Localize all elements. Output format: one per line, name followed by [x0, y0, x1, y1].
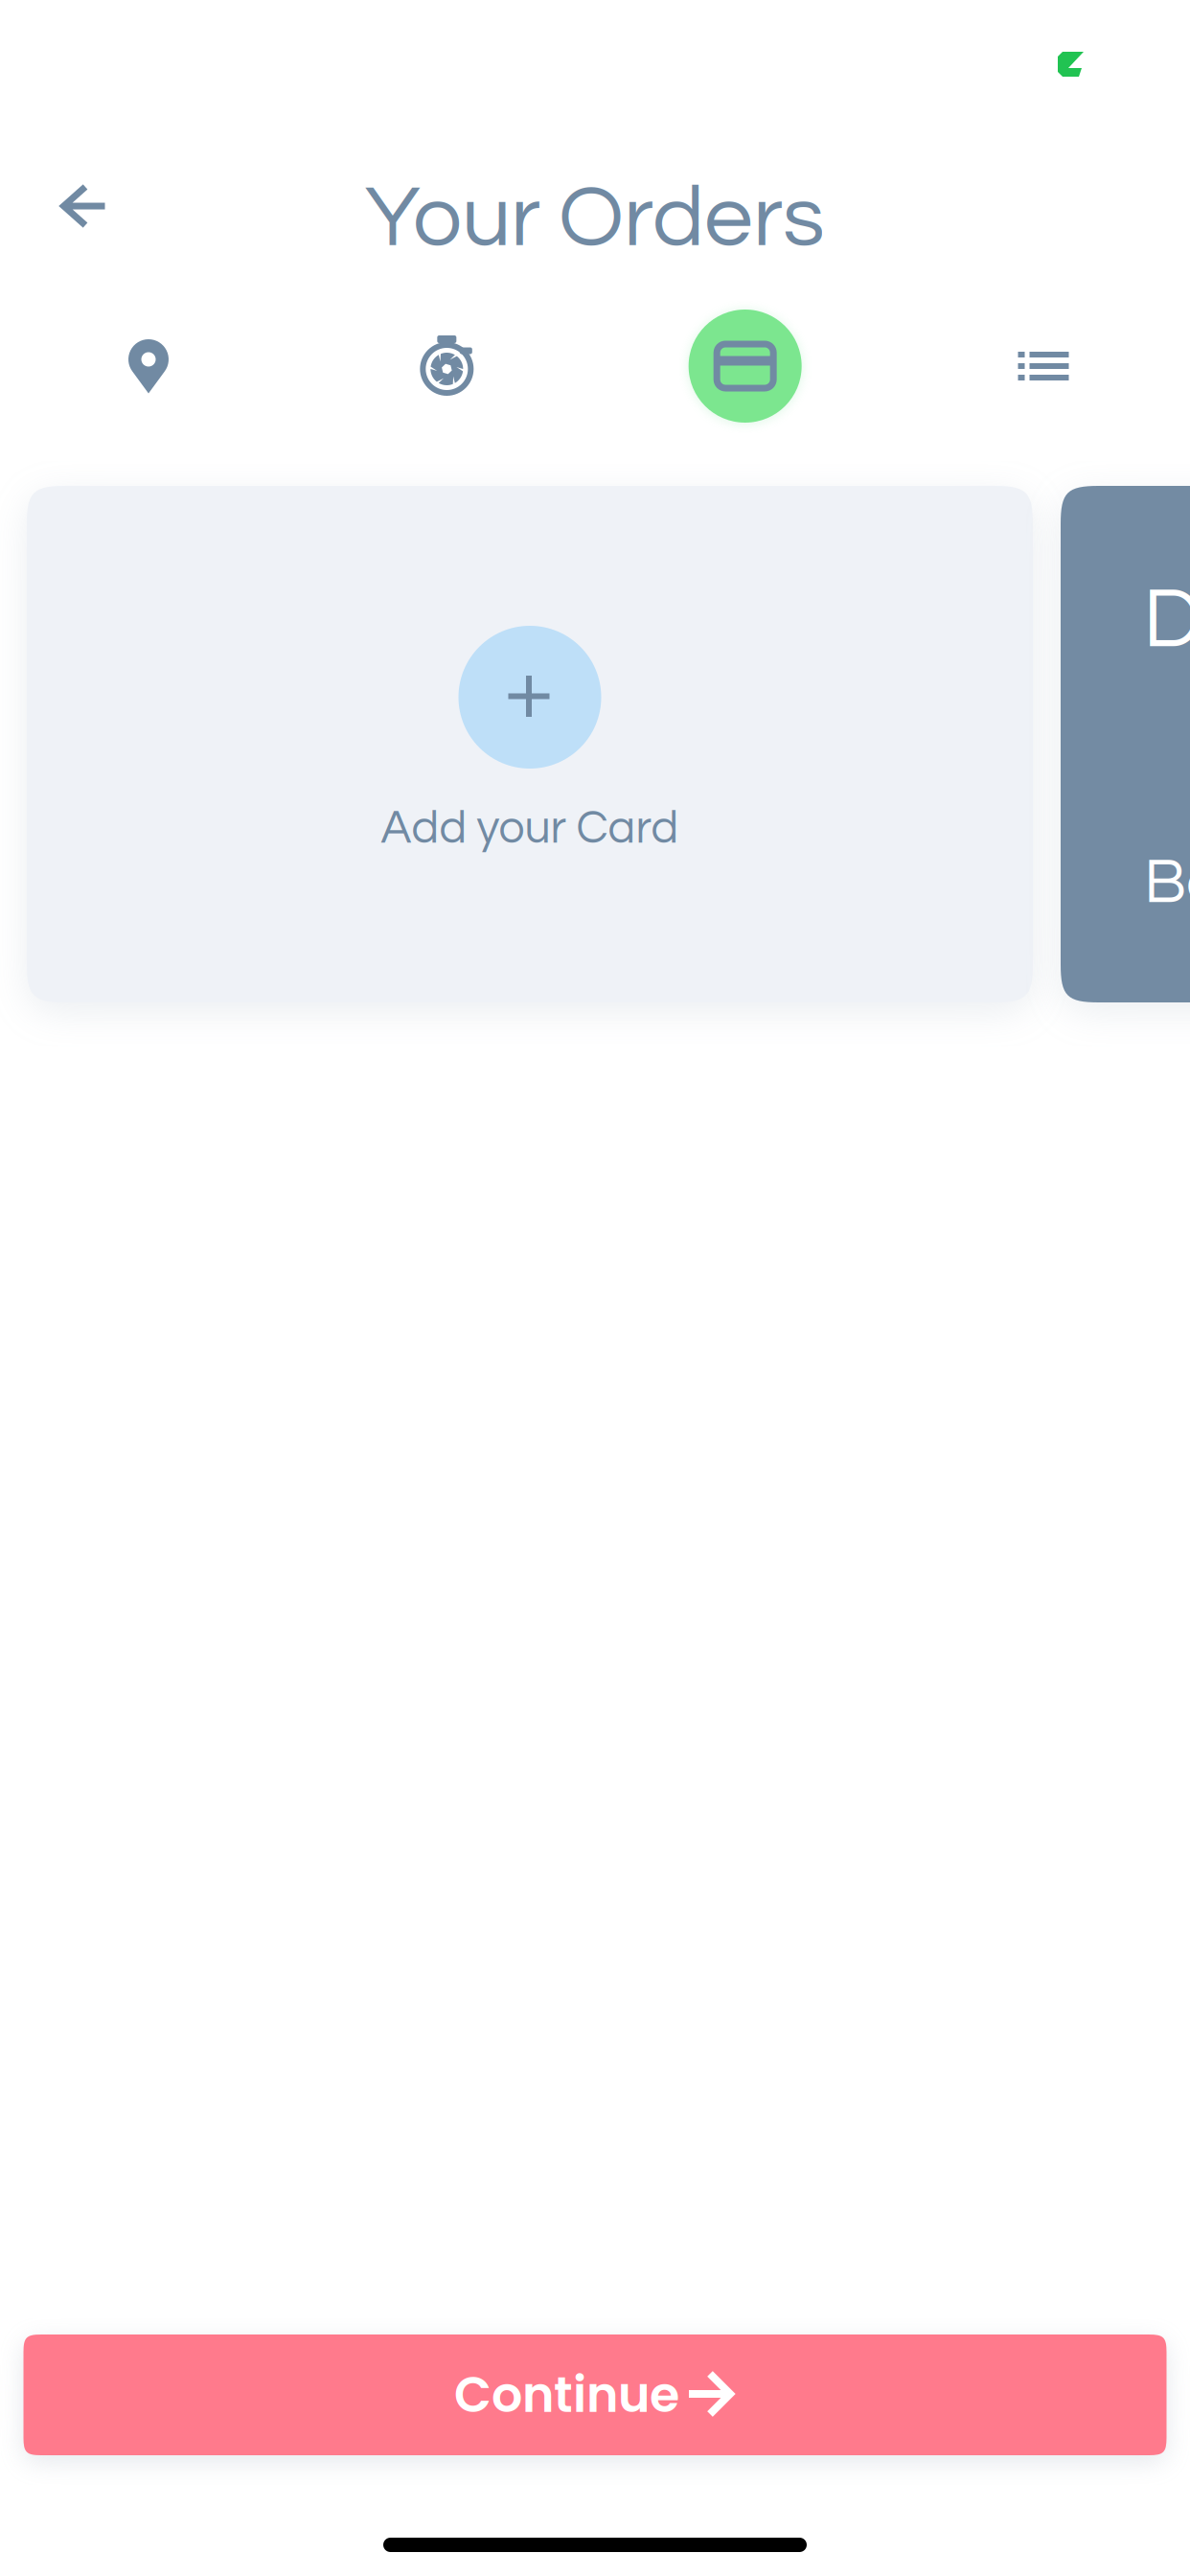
- staticText: Debit Card: [1143, 577, 1190, 664]
- staticText: Your Orders: [365, 174, 825, 263]
- button[interactable]: Continue: [23, 2334, 1167, 2455]
- button[interactable]: Debit Card: [1061, 486, 1190, 1002]
- button[interactable]: Delivery time: [384, 304, 509, 428]
- button[interactable]: Delivery address: [86, 304, 211, 428]
- staticText: Add your Card: [381, 805, 679, 852]
- button[interactable]: Order summary: [981, 304, 1106, 428]
- button[interactable]: Back: [28, 166, 133, 271]
- staticText: Balance: [1144, 850, 1190, 915]
- button[interactable]: Add your Card: [27, 486, 1033, 1002]
- button[interactable]: Payment method: [683, 304, 807, 428]
- staticText: Continue: [454, 2361, 679, 2429]
